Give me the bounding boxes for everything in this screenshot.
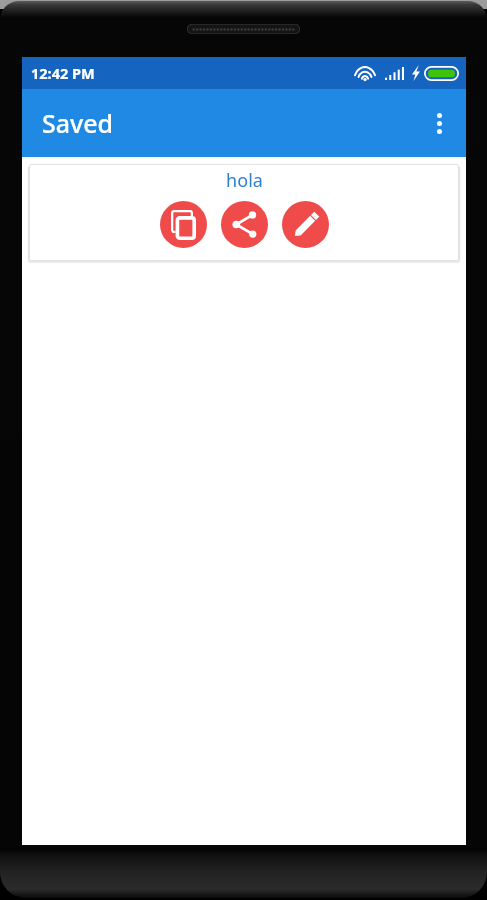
button[interactable]: Copy [160, 201, 207, 248]
button[interactable]: Edit [282, 201, 329, 248]
staticText: hola [226, 168, 263, 193]
button[interactable]: Share [221, 201, 268, 248]
button[interactable]: More options [418, 102, 460, 144]
staticText: Saved [42, 106, 114, 140]
staticText: 12:42 PM [31, 63, 95, 83]
button[interactable]: hola [29, 164, 459, 261]
